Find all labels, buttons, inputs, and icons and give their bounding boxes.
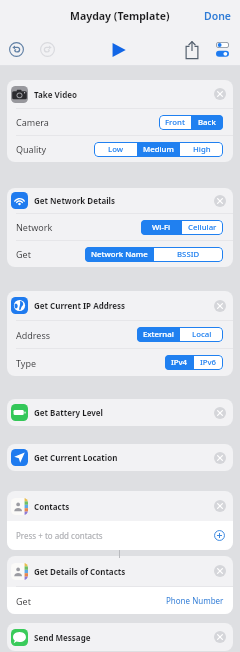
button[interactable]: Remove action [214,88,226,100]
staticText: IPv6 [200,357,217,368]
staticText: Cellular [188,222,217,233]
staticText: Take Video [34,89,78,100]
button[interactable]: Front [159,115,191,130]
staticText: Quality [16,143,47,155]
button[interactable]: Press + to add contacts [7,521,233,550]
staticText: Network [16,221,53,233]
staticText: Low [108,144,124,155]
button[interactable]: Get Network Details [7,188,233,267]
button[interactable]: Contacts [7,491,233,550]
button[interactable]: BSSID [154,247,223,262]
button[interactable]: Run shortcut [112,43,126,57]
staticText: Send Message [34,632,91,643]
button[interactable]: Redo [40,42,55,57]
staticText: Type [16,357,37,369]
button[interactable]: External [137,327,180,342]
staticText: Phone Number [166,595,224,606]
button[interactable]: Done [196,4,240,28]
button[interactable]: IPv6 [194,355,223,370]
button[interactable]: Get Battery Level [7,399,233,426]
staticText: High [193,144,211,155]
staticText: Address [16,329,51,341]
button[interactable]: Share [185,41,199,59]
button[interactable]: Get Current IP Address [7,291,233,376]
button[interactable]: Get Details of Contacts [7,556,233,614]
staticText: Get Battery Level [34,407,103,418]
button[interactable]: Undo [9,42,24,57]
button[interactable]: Send Message [7,623,233,651]
button[interactable]: Settings [216,42,229,57]
button[interactable]: Local [180,327,223,342]
button[interactable]: Add contact [214,530,225,541]
button[interactable]: Remove action [214,300,226,312]
button[interactable]: Low [94,142,137,157]
button[interactable]: Remove action [214,195,226,207]
staticText: Back [198,117,216,128]
staticText: Get [16,595,31,607]
button[interactable]: Network Name [85,247,154,262]
staticText: Press + to add contacts [16,530,103,541]
button[interactable]: Get [7,587,233,614]
staticText: Contacts [34,501,70,512]
staticText: Wi-Fi [152,222,171,233]
staticText: IPv4 [171,357,188,368]
staticText: Camera [16,116,49,128]
button[interactable]: Cellular [182,220,223,235]
button[interactable]: Take Video [7,80,233,162]
staticText: Medium [143,144,174,155]
button[interactable]: Get Current Location [7,444,233,471]
button[interactable]: Medium [137,142,180,157]
button[interactable]: Wi-Fi [141,220,182,235]
staticText: External [143,329,174,340]
button[interactable]: Remove action [214,452,226,464]
button[interactable]: High [180,142,223,157]
button[interactable]: IPv4 [165,355,194,370]
button[interactable]: Back [191,115,223,130]
staticText: Front [165,117,185,128]
staticText: Get [16,248,31,260]
staticText: BSSID [177,249,200,260]
staticText: Get Network Details [34,195,116,206]
button[interactable]: Remove action [214,407,226,419]
staticText: Get Details of Contacts [34,566,126,577]
button[interactable]: Remove action [214,631,226,643]
staticText: Get Current IP Address [34,300,126,311]
staticText: Network Name [91,249,148,260]
staticText: Mayday (Template) [70,9,170,23]
staticText: Done [204,9,232,23]
button[interactable]: Remove action [214,565,226,577]
staticText: Local [192,329,212,340]
button[interactable]: Remove action [214,500,226,512]
staticText: Get Current Location [34,452,118,463]
